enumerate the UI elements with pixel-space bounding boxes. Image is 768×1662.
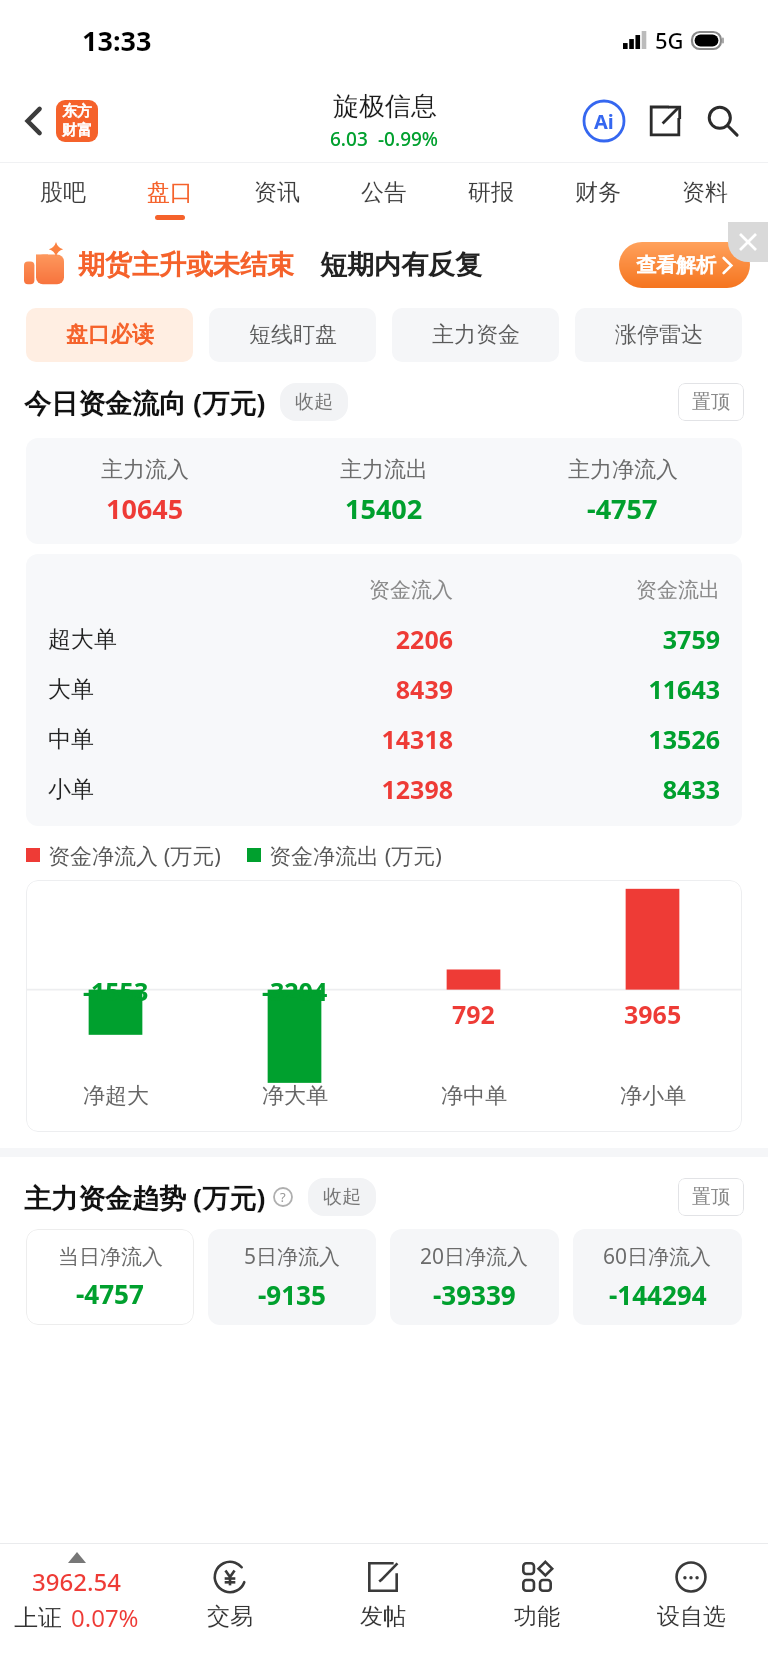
staticText: -0.99%	[378, 126, 439, 152]
staticText: ?	[280, 1188, 286, 1206]
button[interactable]: 盘口必读	[26, 308, 193, 362]
staticText: -39339	[433, 1277, 516, 1312]
staticText: 资讯	[254, 178, 300, 207]
staticText: 研报	[468, 178, 514, 207]
staticText: 20日净流入	[420, 1242, 529, 1271]
staticText: 净中单	[441, 1082, 507, 1110]
button[interactable]: 超大单	[48, 614, 720, 664]
button[interactable]: 盘口	[116, 163, 223, 222]
staticText: 0.07%	[71, 1601, 139, 1634]
staticText: 8433	[522, 772, 720, 806]
staticText: 发帖	[360, 1602, 406, 1631]
staticText: 14318	[255, 722, 453, 756]
button[interactable]: 资料	[651, 163, 758, 222]
button[interactable]: 涨停雷达	[575, 308, 742, 362]
staticText: 792	[452, 997, 495, 1031]
button[interactable]: 收起	[280, 383, 348, 421]
staticText: 收起	[323, 1185, 361, 1209]
staticText: 主力资金趋势 (万元)	[24, 1179, 266, 1216]
staticText: 资金净流出 (万元)	[269, 840, 442, 870]
button[interactable]: 60日净流入	[573, 1229, 742, 1325]
button[interactable]: 大单	[48, 664, 720, 714]
staticText: 2206	[255, 622, 453, 656]
staticText: 10645	[106, 490, 184, 527]
button[interactable]: 发帖	[306, 1544, 460, 1662]
staticText: 交易	[207, 1602, 253, 1631]
staticText: 公告	[361, 178, 407, 207]
button[interactable]: 收起	[308, 1178, 376, 1216]
button[interactable]: 研报	[437, 163, 544, 222]
staticText: 盘口必读	[66, 321, 154, 349]
button[interactable]: 主力流入	[26, 438, 742, 544]
staticText: 中单	[48, 725, 255, 754]
button[interactable]: 搜索	[700, 98, 746, 144]
staticText: 3962.54	[32, 1565, 121, 1598]
staticText: 期货主升或未结束	[78, 248, 294, 282]
staticText: 资金流入	[255, 577, 453, 603]
staticText: 主力资金	[432, 321, 520, 349]
staticText: 财务	[575, 178, 621, 207]
staticText: 功能	[514, 1602, 560, 1631]
button[interactable]: AI 助手	[580, 97, 628, 145]
button[interactable]: 股吧	[10, 163, 116, 222]
staticText: 置顶	[692, 1185, 730, 1209]
staticText: -4757	[76, 1276, 144, 1311]
staticText: 今日资金流向 (万元)	[24, 384, 266, 421]
staticText: -3204	[262, 974, 328, 1008]
staticText: 净小单	[620, 1082, 686, 1110]
staticText: 5G	[655, 25, 684, 55]
staticText: -4757	[587, 490, 658, 527]
button[interactable]: 3962.54	[0, 1544, 153, 1662]
button[interactable]: 设自选	[614, 1544, 768, 1662]
staticText: 主力净流入	[568, 456, 678, 484]
button[interactable]: 置顶	[678, 1178, 744, 1216]
button[interactable]: 返回	[18, 94, 104, 148]
staticText: 资金净流入 (万元)	[48, 840, 221, 870]
staticText: -144294	[609, 1277, 707, 1312]
button[interactable]: 20日净流入	[390, 1229, 559, 1325]
button[interactable]: 分享	[642, 98, 688, 144]
button[interactable]: -1553	[26, 880, 742, 1132]
button[interactable]: 主力资金	[392, 308, 559, 362]
staticText: 置顶	[692, 390, 730, 414]
staticText: 13526	[522, 722, 720, 756]
button[interactable]: 功能	[460, 1544, 614, 1662]
button[interactable]: 小单	[48, 764, 720, 814]
button[interactable]: 5日净流入	[208, 1229, 376, 1325]
staticText: 收起	[295, 390, 333, 414]
button[interactable]: 关闭	[728, 222, 768, 262]
staticText: 3965	[624, 997, 682, 1031]
button[interactable]: 交易	[153, 1544, 306, 1662]
button[interactable]: 当日净流入	[26, 1229, 194, 1325]
staticText: 设自选	[657, 1602, 726, 1631]
button[interactable]: 中单	[48, 714, 720, 764]
button[interactable]: 公告	[330, 163, 437, 222]
button[interactable]: 查看解析	[619, 242, 750, 288]
staticText: 盘口	[147, 178, 193, 207]
staticText: 15402	[345, 490, 423, 527]
staticText: 大单	[48, 675, 255, 704]
button[interactable]: 短线盯盘	[209, 308, 376, 362]
staticText: 13:33	[82, 22, 152, 59]
staticText: 短线盯盘	[249, 321, 337, 349]
staticText: 3759	[522, 622, 720, 656]
staticText: -9135	[258, 1277, 326, 1312]
staticText: 主力流出	[340, 456, 428, 484]
staticText: 11643	[522, 672, 720, 706]
button[interactable]: 说明	[272, 1186, 294, 1208]
staticText: Ai	[594, 108, 614, 135]
staticText: 旋极信息	[333, 90, 437, 123]
button[interactable]: 置顶	[678, 383, 744, 421]
staticText: 净超大	[83, 1082, 149, 1110]
staticText: 短期内有反复	[320, 248, 482, 282]
staticText: 净大单	[262, 1082, 328, 1110]
staticText: 6.03	[330, 126, 368, 152]
button[interactable]: 资讯	[223, 163, 330, 222]
staticText: 主力流入	[101, 456, 189, 484]
staticText: 查看解析	[636, 253, 716, 278]
staticText: 超大单	[48, 625, 255, 654]
staticText: 8439	[255, 672, 453, 706]
staticText: 涨停雷达	[615, 321, 703, 349]
button[interactable]: 财务	[544, 163, 651, 222]
staticText: -1553	[83, 974, 149, 1008]
